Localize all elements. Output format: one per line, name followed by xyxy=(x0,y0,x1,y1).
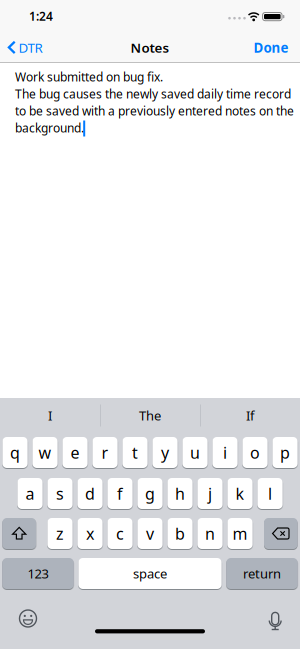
button[interactable]: l xyxy=(257,478,283,509)
staticText: background. xyxy=(15,120,84,136)
button[interactable]: o xyxy=(242,437,268,468)
button[interactable]: b xyxy=(167,518,193,549)
staticText: h xyxy=(175,483,185,504)
button[interactable]: t xyxy=(122,437,148,468)
staticText: to be saved with a previously entered no… xyxy=(15,103,294,119)
staticText: Done xyxy=(253,39,288,56)
button[interactable]: z xyxy=(47,518,73,549)
button[interactable] xyxy=(2,518,36,549)
button[interactable]: j xyxy=(197,478,223,509)
staticText: f xyxy=(117,483,123,504)
staticText: i xyxy=(223,442,227,463)
button[interactable]: u xyxy=(182,437,208,468)
staticText: b xyxy=(175,523,185,544)
staticText: s xyxy=(56,483,64,504)
staticText: l xyxy=(268,483,272,504)
staticText: k xyxy=(235,483,244,504)
staticText: e xyxy=(70,442,79,463)
button[interactable]: c xyxy=(107,518,133,549)
staticText: Work submitted on bug fix. xyxy=(15,69,163,85)
staticText: d xyxy=(85,483,95,504)
staticText: return xyxy=(243,565,281,582)
staticText: If xyxy=(246,407,254,424)
staticText: m xyxy=(232,523,247,544)
button[interactable]: g xyxy=(137,478,163,509)
button[interactable] xyxy=(258,603,292,637)
staticText: q xyxy=(10,442,20,463)
staticText: u xyxy=(190,442,200,463)
button[interactable]: m xyxy=(227,518,253,549)
button[interactable]: DTR xyxy=(7,39,42,56)
button[interactable]: e xyxy=(62,437,88,468)
button[interactable]: s xyxy=(47,478,73,509)
button[interactable] xyxy=(264,518,298,549)
staticText: The bug causes the newly saved daily tim… xyxy=(15,86,291,102)
button[interactable]: h xyxy=(167,478,193,509)
button[interactable]: space xyxy=(78,558,222,589)
staticText: 1:24 xyxy=(29,8,53,24)
staticText: v xyxy=(146,523,154,544)
staticText: 123 xyxy=(27,565,48,582)
staticText: I xyxy=(48,407,52,424)
button[interactable]: f xyxy=(107,478,133,509)
button[interactable]: r xyxy=(92,437,118,468)
button[interactable]: p xyxy=(272,437,298,468)
staticText: x xyxy=(86,523,94,544)
button[interactable]: x xyxy=(77,518,103,549)
button[interactable] xyxy=(11,601,45,635)
button[interactable]: q xyxy=(2,437,28,468)
staticText: a xyxy=(25,483,34,504)
button[interactable]: return xyxy=(226,558,298,589)
button[interactable]: The xyxy=(102,398,198,432)
staticText: Notes xyxy=(130,39,169,56)
button[interactable]: n xyxy=(197,518,223,549)
staticText: The xyxy=(139,407,161,424)
staticText: y xyxy=(161,442,169,463)
staticText: r xyxy=(101,442,108,463)
button[interactable]: I xyxy=(2,398,98,432)
button[interactable]: Done xyxy=(253,39,288,56)
button[interactable]: If xyxy=(202,398,298,432)
staticText: w xyxy=(38,442,51,463)
staticText: n xyxy=(205,523,215,544)
button[interactable]: a xyxy=(17,478,43,509)
button[interactable]: y xyxy=(152,437,178,468)
button[interactable]: i xyxy=(212,437,238,468)
staticText: DTR xyxy=(18,39,42,56)
staticText: o xyxy=(250,442,260,463)
button[interactable]: k xyxy=(227,478,253,509)
staticText: t xyxy=(132,442,138,463)
button[interactable]: 123 xyxy=(2,558,74,589)
button[interactable]: d xyxy=(77,478,103,509)
staticText: g xyxy=(145,483,155,504)
staticText: space xyxy=(133,565,167,582)
button[interactable]: v xyxy=(137,518,163,549)
staticText: z xyxy=(56,523,64,544)
staticText: p xyxy=(280,442,290,463)
button[interactable]: w xyxy=(32,437,58,468)
staticText: j xyxy=(208,483,212,504)
staticText: c xyxy=(116,523,124,544)
